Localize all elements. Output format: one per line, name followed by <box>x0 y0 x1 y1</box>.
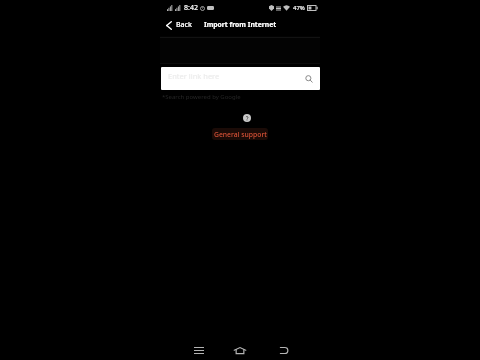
button[interactable]: Help <box>243 114 251 122</box>
button[interactable]: Back <box>273 339 295 360</box>
staticText: *Search powered by Google <box>162 93 241 101</box>
staticText: Import from Internet <box>204 20 277 29</box>
staticText: 8:42 <box>184 3 198 13</box>
button[interactable]: Recents <box>188 339 210 360</box>
button[interactable]: Home <box>229 339 251 360</box>
button[interactable]: Back <box>163 18 195 32</box>
staticText: Enter link here <box>168 71 220 81</box>
staticText: General support <box>214 130 267 139</box>
button[interactable]: General support <box>212 128 268 140</box>
staticText: 47% <box>293 4 305 12</box>
staticText: Back <box>176 20 192 30</box>
button[interactable]: Enter link here <box>161 67 320 90</box>
